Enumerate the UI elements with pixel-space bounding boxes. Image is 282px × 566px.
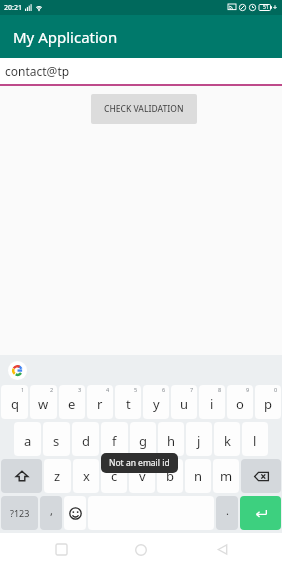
button[interactable]: 3 bbox=[59, 385, 85, 419]
staticText: t bbox=[126, 395, 131, 413]
button[interactable]: 9 bbox=[227, 385, 253, 419]
staticText: j bbox=[197, 432, 201, 450]
staticText: h bbox=[167, 432, 176, 450]
staticText: 20:21 bbox=[4, 3, 22, 13]
staticText: s bbox=[53, 432, 60, 450]
button[interactable]: Recents bbox=[41, 533, 81, 566]
button[interactable]: n bbox=[185, 459, 211, 493]
button[interactable]: 5 bbox=[115, 385, 141, 419]
button[interactable]: Shift bbox=[1, 459, 42, 493]
button[interactable]: Google bbox=[8, 361, 27, 380]
staticText: + bbox=[273, 3, 278, 13]
button[interactable]: v bbox=[129, 459, 155, 493]
staticText: 0 bbox=[274, 386, 278, 393]
button[interactable]: z bbox=[44, 459, 71, 493]
button[interactable]: . bbox=[216, 496, 238, 530]
staticText: k bbox=[224, 432, 231, 450]
staticText: i bbox=[210, 395, 214, 413]
button[interactable]: Home bbox=[121, 533, 161, 566]
staticText: v bbox=[139, 467, 146, 485]
staticText: 8 bbox=[218, 386, 222, 393]
button[interactable]: ?123 bbox=[1, 496, 38, 530]
staticText: o bbox=[236, 395, 244, 413]
button[interactable]: j bbox=[186, 422, 212, 456]
staticText: a bbox=[24, 432, 32, 450]
staticText: 3 bbox=[78, 386, 82, 393]
staticText: 1 bbox=[21, 386, 25, 393]
staticText: My Application bbox=[13, 27, 118, 47]
button[interactable]: CHECK VALIDATION bbox=[91, 94, 197, 124]
button[interactable]: 4 bbox=[87, 385, 113, 419]
button[interactable]: 2 bbox=[30, 385, 57, 419]
staticText: b bbox=[166, 467, 174, 485]
button[interactable]: f bbox=[101, 422, 128, 456]
button[interactable]: k bbox=[214, 422, 240, 456]
staticText: n bbox=[194, 467, 203, 485]
staticText: m bbox=[220, 467, 233, 485]
button[interactable]: x bbox=[73, 459, 99, 493]
button[interactable]: g bbox=[130, 422, 156, 456]
staticText: , bbox=[50, 503, 53, 518]
staticText: 5 bbox=[134, 386, 138, 393]
button[interactable]: b bbox=[157, 459, 183, 493]
staticText: l bbox=[253, 432, 257, 450]
button[interactable]: 7 bbox=[171, 385, 197, 419]
button[interactable]: contact@tp bbox=[0, 58, 282, 86]
staticText: 51 bbox=[263, 4, 269, 11]
button[interactable]: 0 bbox=[255, 385, 281, 419]
staticText: z bbox=[54, 467, 61, 485]
button[interactable]: s bbox=[43, 422, 70, 456]
button[interactable]: h bbox=[158, 422, 184, 456]
staticText: 6 bbox=[162, 386, 166, 393]
staticText: x bbox=[83, 467, 90, 485]
button[interactable]: a bbox=[14, 422, 41, 456]
staticText: f bbox=[112, 432, 117, 450]
button[interactable]: l bbox=[242, 422, 268, 456]
staticText: w bbox=[38, 395, 49, 413]
button[interactable]: Enter bbox=[240, 496, 281, 530]
staticText: 2 bbox=[50, 386, 54, 393]
staticText: CHECK VALIDATION bbox=[104, 103, 184, 115]
button[interactable]: , bbox=[40, 496, 62, 530]
staticText: d bbox=[82, 432, 90, 450]
staticText: . bbox=[226, 503, 229, 518]
staticText: Not an email id bbox=[109, 457, 170, 469]
staticText: 4 bbox=[106, 386, 110, 393]
button[interactable]: Emoji bbox=[64, 496, 86, 530]
button[interactable]: 1 bbox=[1, 385, 28, 419]
staticText: y bbox=[153, 395, 160, 413]
staticText: r bbox=[97, 395, 103, 413]
staticText: u bbox=[180, 395, 189, 413]
button[interactable]: c bbox=[101, 459, 127, 493]
staticText: q bbox=[11, 395, 19, 413]
staticText: e bbox=[68, 395, 76, 413]
button[interactable]: Backspace bbox=[241, 459, 281, 493]
staticText: 7 bbox=[190, 386, 194, 393]
button[interactable]: Back bbox=[202, 533, 242, 566]
staticText: contact@tp bbox=[5, 63, 70, 79]
staticText: c bbox=[111, 467, 118, 485]
staticText: g bbox=[139, 432, 147, 450]
button[interactable]: 8 bbox=[199, 385, 225, 419]
button[interactable]: 6 bbox=[143, 385, 169, 419]
staticText: p bbox=[264, 395, 272, 413]
button[interactable]: d bbox=[72, 422, 99, 456]
staticText: 9 bbox=[246, 386, 250, 393]
staticText: ?123 bbox=[10, 507, 30, 519]
button[interactable]: m bbox=[213, 459, 239, 493]
